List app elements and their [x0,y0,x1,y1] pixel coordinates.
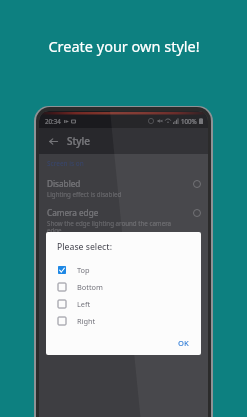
button[interactable]: Screen edges [39,240,208,269]
other: Disabled [193,180,201,188]
staticText: Screen is on [47,159,84,168]
staticText: Right [77,316,96,326]
button[interactable]: Top [46,261,201,278]
staticText: Lighting effect is disabled [47,190,122,198]
staticText: Fingerprint sensor [47,302,118,313]
staticText: Create your own style! [48,36,200,56]
staticText: 100% [181,117,197,125]
staticText: Show a 'LED' dot in the statusbar [47,285,143,293]
staticText: 20:34 [45,117,61,125]
staticText: Bottom [77,282,103,292]
button[interactable]: OK [166,334,201,352]
button[interactable]: Statusbar LED [39,269,208,298]
staticText: Show the edge lighting around the camera… [47,219,187,235]
button[interactable]: Left [46,295,201,312]
button[interactable]: Bottom [46,278,201,295]
other: Camera edge [193,209,201,217]
staticText: Left [77,299,91,309]
staticText: OK [178,338,189,348]
button[interactable]: Navigate up [46,134,60,148]
staticText: Style [67,134,91,148]
button[interactable]: Fingerprint sensor [39,298,208,335]
staticText: Statusbar LED [47,273,101,284]
button[interactable]: Disabled [39,174,208,203]
staticText: Screen edges [47,244,99,255]
staticText: Please select: [57,241,112,253]
button[interactable]: Right [46,312,201,329]
staticText: Top [77,265,90,275]
staticText: Disabled [47,178,81,189]
staticText: Show a lighting effect around the finger… [47,314,187,330]
button[interactable]: Camera edge [39,203,208,240]
staticText: Camera edge [47,207,99,218]
